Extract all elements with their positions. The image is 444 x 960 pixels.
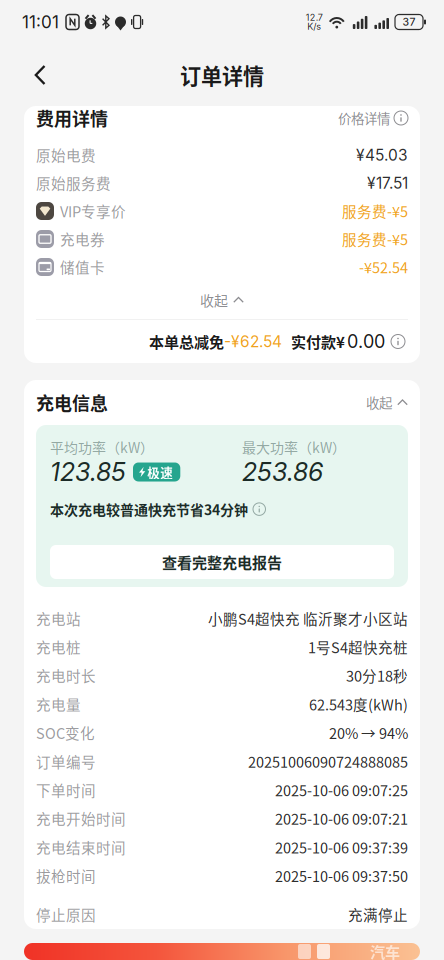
staticText: 12.7 (306, 12, 323, 23)
staticText: 2025-10-06 09:37:39 (275, 837, 408, 858)
staticText: 37 (402, 16, 415, 28)
staticText: 查看完整充电报告 (162, 551, 282, 573)
staticText: 汽车 (370, 941, 400, 960)
staticText: 20% → 94% (329, 722, 408, 743)
button[interactable]: 价格详情 (338, 101, 408, 135)
staticText: 20251006090724888085 (248, 751, 408, 772)
staticText: 服务费-¥5 (342, 200, 408, 221)
button[interactable]: 查看完整充电报告 (50, 545, 394, 579)
staticText: 服务费-¥5 (342, 228, 408, 249)
staticText: 订单详情 (180, 60, 264, 90)
staticText: 极速 (147, 463, 173, 481)
staticText: SOC变化 (36, 722, 95, 743)
staticText: 小鹏S4超快充 临沂聚才小区站 (208, 608, 408, 629)
staticText: 充电信息 (36, 389, 108, 416)
staticText: 2025-10-06 09:37:50 (275, 865, 408, 886)
staticText: 原始服务费 (36, 172, 111, 193)
staticText: 充电券 (60, 228, 105, 249)
staticText: 2025-10-06 09:07:25 (275, 779, 408, 800)
staticText: 本次充电较普通快充节省34分钟 (50, 499, 248, 519)
button[interactable]: 推广横幅 (0, 943, 444, 960)
staticText: 30分18秒 (346, 665, 408, 686)
staticText: 1号S4超快充桩 (308, 636, 408, 657)
staticText: 订单编号 (36, 751, 96, 772)
staticText: 充电桩 (36, 636, 81, 657)
button[interactable]: 返回 (19, 53, 61, 97)
staticText: 拔枪时间 (36, 865, 96, 886)
staticText: K/s (307, 21, 321, 32)
staticText: 充满停止 (348, 904, 408, 925)
staticText: 充电时长 (36, 665, 96, 686)
staticText: 11:01 (22, 12, 59, 32)
staticText: 实付款¥ (291, 331, 345, 352)
staticText: 价格详情 (338, 108, 390, 128)
staticText: 平均功率（kW） (50, 437, 154, 457)
staticText: 收起 (200, 290, 228, 310)
button[interactable]: 收起 (366, 385, 408, 419)
staticText: 充电站 (36, 608, 81, 629)
staticText: 停止原因 (36, 904, 96, 925)
staticText: 最大功率（kW） (242, 437, 346, 457)
staticText: 原始电费 (36, 144, 96, 165)
staticText: 充电开始时间 (36, 808, 126, 829)
staticText: 储值卡 (60, 256, 105, 277)
staticText: 充电结束时间 (36, 837, 126, 858)
staticText: 123.85 (50, 457, 126, 487)
staticText: 充电量 (36, 694, 81, 715)
staticText: 收起 (366, 393, 392, 412)
staticText: -¥62.54 (224, 332, 282, 351)
staticText: -¥52.54 (359, 256, 408, 277)
staticText: ¥45.03 (356, 146, 408, 164)
staticText: 2025-10-06 09:07:21 (275, 808, 408, 829)
button[interactable]: 收起 (24, 281, 420, 319)
staticText: VIP专享价 (60, 200, 126, 221)
staticText: 62.543度(kWh) (309, 694, 408, 715)
staticText: ¥17.51 (367, 174, 408, 192)
staticText: 下单时间 (36, 779, 96, 800)
staticText: 费用详情 (36, 105, 108, 131)
staticText: 本单总减免 (149, 331, 224, 352)
staticText: 253.86 (242, 457, 323, 487)
staticText: 0.00 (347, 331, 385, 352)
